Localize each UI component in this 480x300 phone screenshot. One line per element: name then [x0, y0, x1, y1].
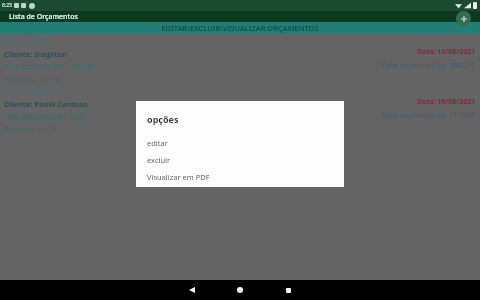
- staticText: Data: 19/08/2021: [417, 97, 476, 107]
- button[interactable]: Número 00002: [0, 83, 480, 133]
- staticText: Número 00001: [4, 36, 53, 46]
- staticText: Desconto 0.0 %: [4, 125, 57, 133]
- staticText: EDITAR\EXCLUIR\VISUALIZAR ORÇAMENTOS: [0, 23, 480, 33]
- button[interactable]: Adicionar orçamento: [456, 11, 471, 26]
- staticText: editar: [147, 138, 168, 148]
- staticText: Total desconto R$: - 0,00: [4, 112, 84, 122]
- staticText: Total orçamento R$: 1177,00: [382, 111, 476, 121]
- staticText: excluir: [147, 155, 171, 165]
- staticText: opções: [147, 113, 179, 125]
- button[interactable]: Back: [180, 280, 204, 300]
- button[interactable]: excluir: [136, 151, 344, 168]
- button[interactable]: editar: [136, 134, 344, 151]
- staticText: Lista de Orçamentos: [9, 12, 78, 22]
- staticText: Visualizar em PDF: [147, 172, 210, 182]
- staticText: 6:23: [2, 2, 12, 9]
- button[interactable]: Número 00001: [0, 33, 480, 83]
- staticText: Cliente: Iragliton: [4, 49, 68, 59]
- staticText: Cliente: Paulo Cardoso: [4, 99, 88, 109]
- button[interactable]: Home: [228, 280, 252, 300]
- button[interactable]: Visualizar em PDF: [136, 168, 344, 185]
- staticText: Número 00002: [4, 86, 53, 96]
- staticText: Data: 13/08/2021: [417, 47, 476, 57]
- staticText: Total orçamento R$: 3800,70: [382, 61, 476, 71]
- button[interactable]: Recent apps: [276, 280, 300, 300]
- button[interactable]: EDITAR\EXCLUIR\VISUALIZAR ORÇAMENTOS: [0, 22, 480, 33]
- staticText: Total desconto R$: - 372,30: [4, 62, 92, 72]
- staticText: Desconto 10.0 %: [4, 75, 61, 83]
